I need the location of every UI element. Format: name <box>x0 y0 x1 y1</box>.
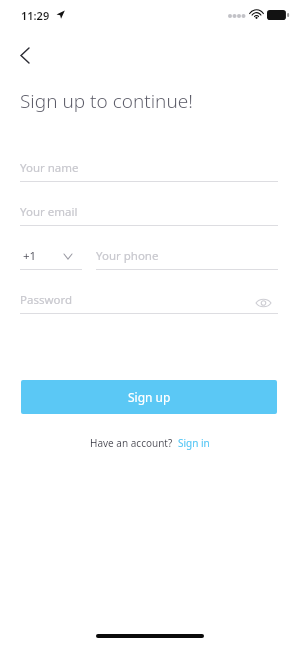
button[interactable]: Show password <box>252 292 274 314</box>
button[interactable]: Your email <box>20 202 278 226</box>
staticText: +1 <box>23 248 37 264</box>
button[interactable]: Sign up <box>21 380 277 414</box>
button[interactable]: Country code <box>20 246 82 270</box>
staticText: Sign up to continue! <box>20 88 193 114</box>
staticText: Sign up <box>128 389 171 405</box>
staticText: Your phone <box>96 248 159 264</box>
staticText: Sign in <box>178 436 210 450</box>
staticText: 11:29 <box>21 8 50 23</box>
button[interactable]: Password <box>20 290 278 314</box>
staticText: Have an account? <box>90 436 173 450</box>
staticText: Your name <box>20 160 79 176</box>
button[interactable]: Sign in <box>178 436 210 450</box>
staticText: Your email <box>20 204 78 220</box>
staticText: Password <box>20 292 73 308</box>
button[interactable]: Your phone <box>96 246 278 270</box>
button[interactable]: Back <box>8 38 42 72</box>
button[interactable]: Your name <box>20 158 278 182</box>
